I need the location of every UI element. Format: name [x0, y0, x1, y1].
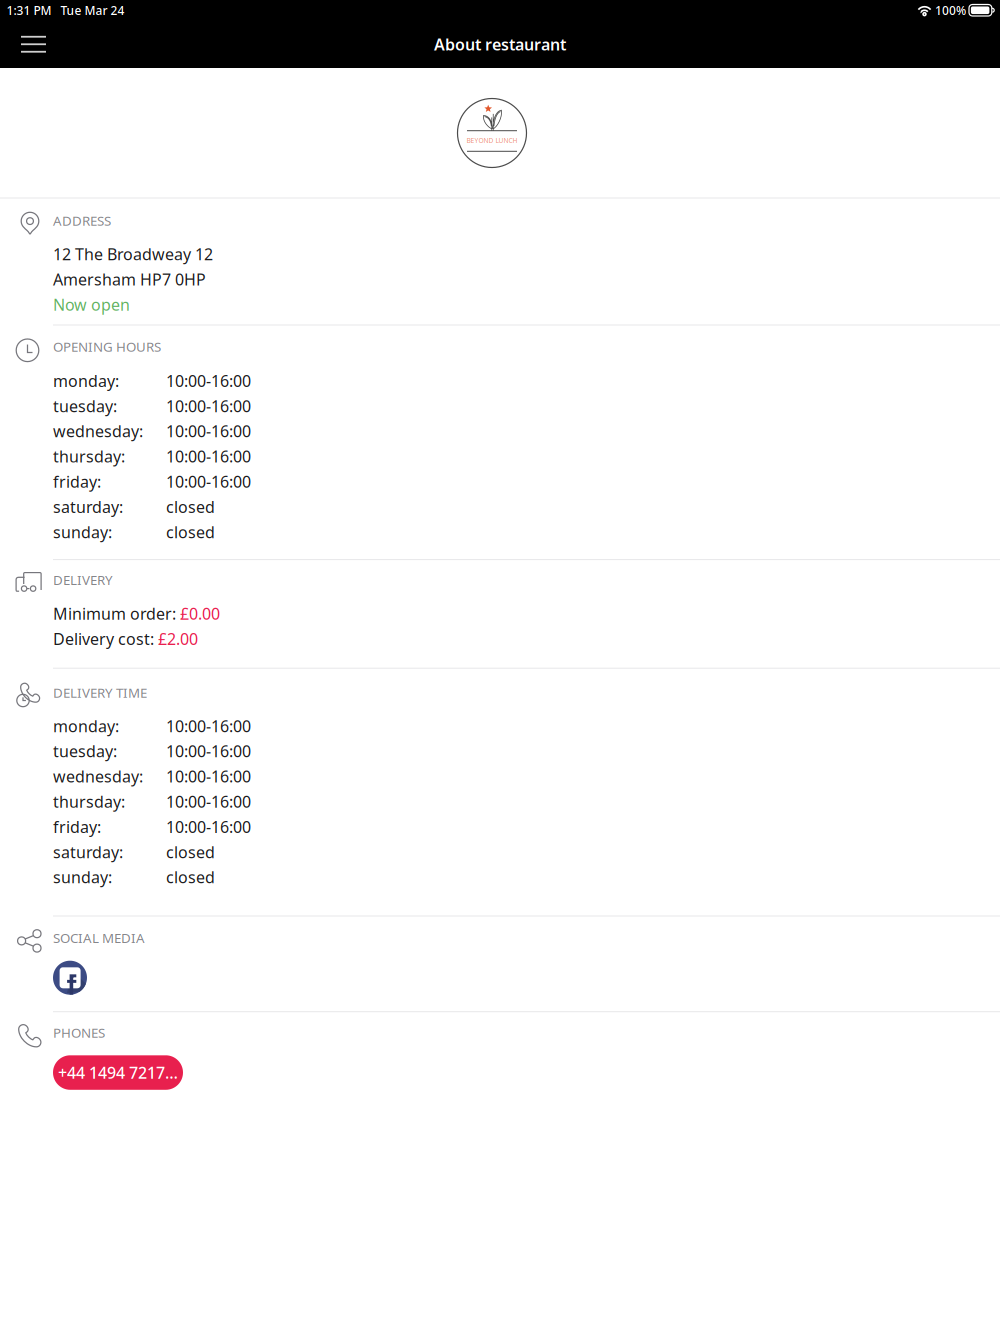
staticText: 12 The Broadweay 12: [53, 243, 213, 265]
staticText: thursday:: [53, 446, 125, 467]
staticText: DELIVERY: [53, 571, 113, 589]
staticText: 10:00-16:00: [166, 370, 251, 391]
staticText: 10:00-16:00: [166, 395, 251, 416]
staticText: £0.00: [180, 603, 220, 624]
staticText: ADDRESS: [53, 212, 111, 229]
staticText: Minimum order:: [53, 603, 180, 624]
staticText: 10:00-16:00: [166, 740, 251, 762]
staticText: thursday:: [53, 791, 125, 812]
staticText: friday:: [53, 471, 101, 492]
staticText: About restaurant: [434, 34, 566, 55]
staticText: tuesday:: [53, 740, 117, 762]
staticText: Amersham HP7 0HP: [53, 269, 206, 290]
staticText: closed: [166, 521, 215, 542]
staticText: 10:00-16:00: [166, 791, 251, 812]
staticText: Delivery cost:: [53, 628, 158, 649]
staticText: OPENING HOURS: [53, 338, 161, 355]
staticText: SOCIAL MEDIA: [53, 929, 145, 947]
staticText: 10:00-16:00: [166, 471, 251, 492]
button[interactable]: Facebook: [53, 961, 87, 995]
staticText: wednesday:: [53, 420, 143, 442]
staticText: 10:00-16:00: [166, 766, 251, 787]
staticText: 1:31 PM Tue Mar 24: [6, 2, 124, 18]
staticText: 10:00-16:00: [166, 715, 251, 736]
staticText: BEYOND LUNCH: [466, 136, 517, 145]
button[interactable]: +44 1494 7217…: [53, 1055, 183, 1090]
button[interactable]: Menu: [0, 23, 62, 65]
staticText: PHONES: [53, 1024, 105, 1041]
staticText: saturday:: [53, 841, 123, 862]
staticText: 10:00-16:00: [166, 420, 251, 442]
staticText: closed: [166, 866, 215, 888]
staticText: wednesday:: [53, 766, 143, 787]
staticText: £2.00: [158, 628, 198, 649]
staticText: 10:00-16:00: [166, 816, 251, 837]
staticText: 10:00-16:00: [166, 446, 251, 467]
staticText: closed: [166, 841, 215, 862]
staticText: saturday:: [53, 496, 123, 517]
staticText: Now open: [53, 294, 130, 315]
staticText: monday:: [53, 370, 119, 391]
staticText: +44 1494 7217…: [58, 1062, 178, 1083]
staticText: sunday:: [53, 521, 112, 542]
staticText: friday:: [53, 816, 101, 837]
staticText: closed: [166, 496, 215, 517]
staticText: tuesday:: [53, 395, 117, 416]
staticText: sunday:: [53, 866, 112, 888]
staticText: 100%: [932, 2, 969, 18]
staticText: DELIVERY TIME: [53, 684, 147, 701]
staticText: monday:: [53, 715, 119, 736]
